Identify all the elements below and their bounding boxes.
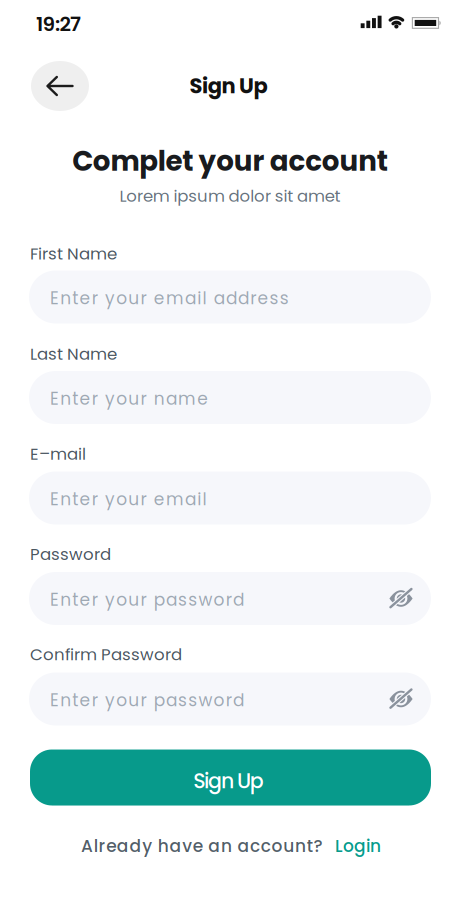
staticText: Sign Up	[189, 71, 268, 101]
staticText: First Name	[30, 242, 117, 265]
staticText: Confirm Password	[30, 643, 182, 666]
staticText: Enter your email address	[50, 286, 289, 310]
staticText: Enter your password	[50, 688, 244, 712]
staticText: Complet your account	[72, 142, 388, 180]
button[interactable]: Back	[31, 61, 89, 111]
button[interactable]: Login	[335, 831, 395, 861]
staticText: Login	[335, 834, 381, 858]
staticText: Last Name	[30, 342, 117, 365]
staticText: E–mail	[30, 442, 86, 466]
staticText: Lorem ipsum dolor sit amet	[119, 184, 341, 207]
staticText: Already have an account?	[81, 834, 322, 858]
staticText: Enter your email	[50, 487, 206, 511]
staticText: Password	[30, 543, 111, 566]
button[interactable]: Sign Up	[30, 749, 431, 805]
staticText: Enter your password	[50, 588, 244, 612]
staticText: 19:27	[36, 10, 81, 38]
staticText: Sign Up	[193, 767, 264, 795]
button[interactable]: Show password	[387, 687, 415, 711]
staticText: Enter your name	[50, 387, 208, 411]
button[interactable]: Show password	[387, 586, 415, 610]
